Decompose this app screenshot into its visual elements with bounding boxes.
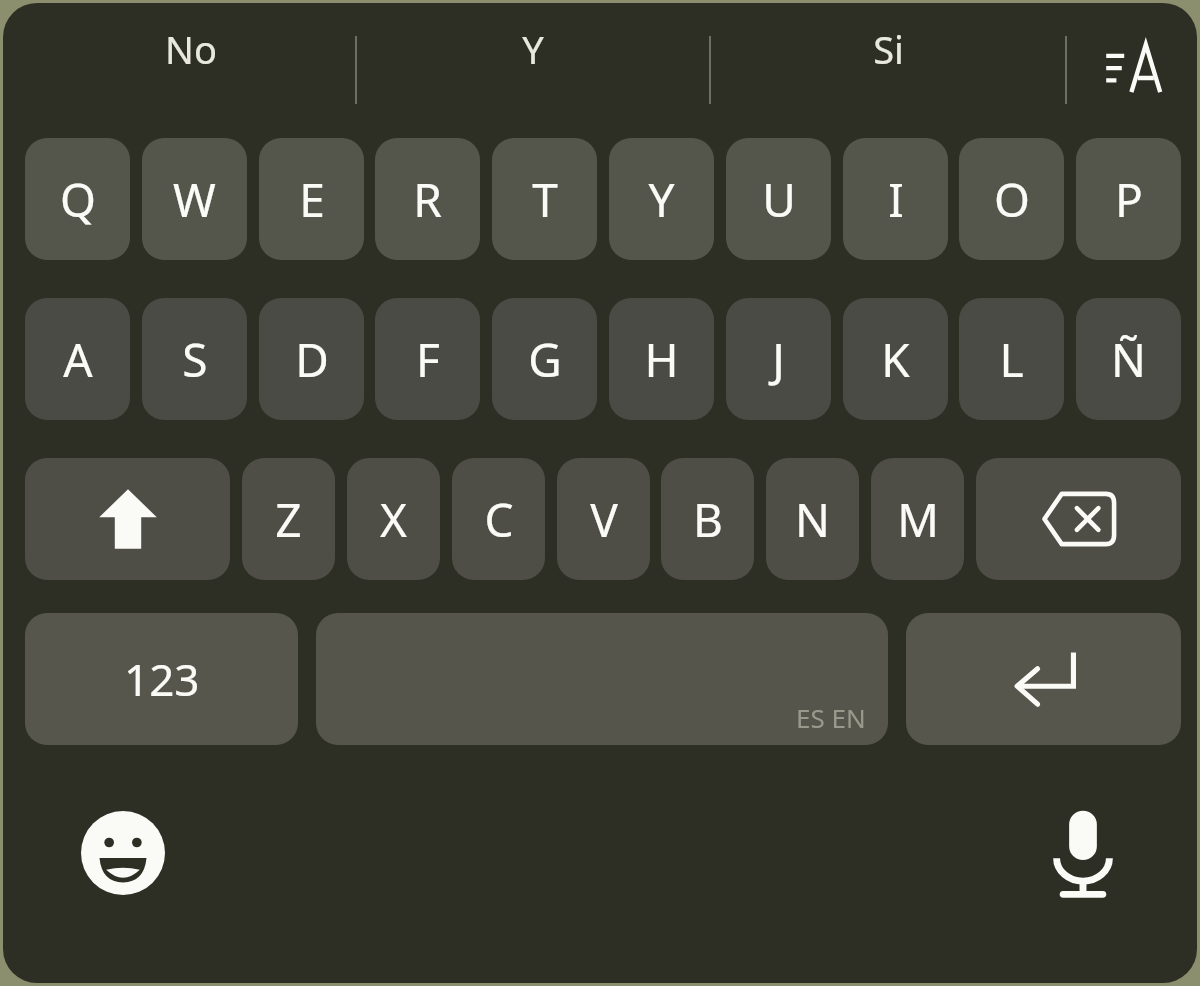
button[interactable]: Space: [316, 613, 888, 745]
button[interactable]: H: [609, 298, 714, 420]
button[interactable]: A: [25, 298, 130, 420]
button[interactable]: S: [142, 298, 247, 420]
staticText: A: [63, 328, 93, 391]
button[interactable]: Y: [609, 138, 714, 260]
button[interactable]: 123: [25, 613, 298, 745]
staticText: E: [299, 168, 325, 231]
staticText: X: [380, 488, 407, 551]
button[interactable]: Z: [242, 458, 335, 580]
staticText: Q: [60, 168, 96, 231]
staticText: D: [295, 328, 329, 391]
staticText: U: [762, 168, 796, 231]
staticText: Y: [648, 168, 675, 231]
button[interactable]: J: [726, 298, 831, 420]
staticText: M: [897, 488, 939, 551]
button[interactable]: O: [959, 138, 1064, 260]
button[interactable]: Si: [710, 3, 1066, 131]
button[interactable]: Text editing options: [1066, 3, 1197, 131]
button[interactable]: D: [259, 298, 364, 420]
staticText: O: [994, 168, 1030, 231]
staticText: T: [532, 168, 558, 231]
staticText: ES EN: [796, 700, 866, 735]
button[interactable]: N: [766, 458, 859, 580]
button[interactable]: L: [959, 298, 1064, 420]
button[interactable]: U: [726, 138, 831, 260]
staticText: Si: [873, 23, 904, 75]
staticText: C: [484, 488, 514, 551]
staticText: I: [888, 168, 904, 231]
staticText: N: [795, 488, 830, 551]
staticText: W: [173, 168, 216, 231]
button[interactable]: G: [492, 298, 597, 420]
button[interactable]: I: [843, 138, 948, 260]
button[interactable]: Emoji: [63, 793, 183, 913]
staticText: B: [693, 488, 723, 551]
button[interactable]: Backspace: [976, 458, 1181, 580]
button[interactable]: K: [843, 298, 948, 420]
button[interactable]: F: [375, 298, 480, 420]
button[interactable]: Voice input: [1023, 793, 1143, 913]
staticText: Ñ: [1111, 328, 1146, 391]
button[interactable]: C: [452, 458, 545, 580]
staticText: H: [644, 328, 679, 391]
staticText: V: [590, 488, 618, 551]
staticText: No: [165, 23, 217, 75]
button[interactable]: M: [871, 458, 964, 580]
staticText: K: [881, 328, 910, 391]
staticText: Z: [275, 488, 302, 551]
staticText: S: [182, 328, 208, 391]
button[interactable]: Shift: [25, 458, 230, 580]
button[interactable]: Enter: [906, 613, 1181, 745]
staticText: J: [772, 328, 785, 391]
staticText: P: [1115, 168, 1143, 231]
button[interactable]: R: [375, 138, 480, 260]
staticText: R: [413, 168, 442, 231]
button[interactable]: Ñ: [1076, 298, 1181, 420]
button[interactable]: No: [25, 3, 356, 131]
button[interactable]: Y: [356, 3, 710, 131]
button[interactable]: T: [492, 138, 597, 260]
staticText: 123: [124, 649, 200, 709]
staticText: L: [999, 328, 1024, 391]
staticText: F: [416, 328, 440, 391]
button[interactable]: E: [259, 138, 364, 260]
button[interactable]: B: [661, 458, 754, 580]
button[interactable]: V: [557, 458, 650, 580]
staticText: G: [528, 328, 562, 391]
button[interactable]: W: [142, 138, 247, 260]
staticText: Y: [522, 23, 544, 75]
button[interactable]: P: [1076, 138, 1181, 260]
button[interactable]: X: [347, 458, 440, 580]
button[interactable]: Q: [25, 138, 130, 260]
